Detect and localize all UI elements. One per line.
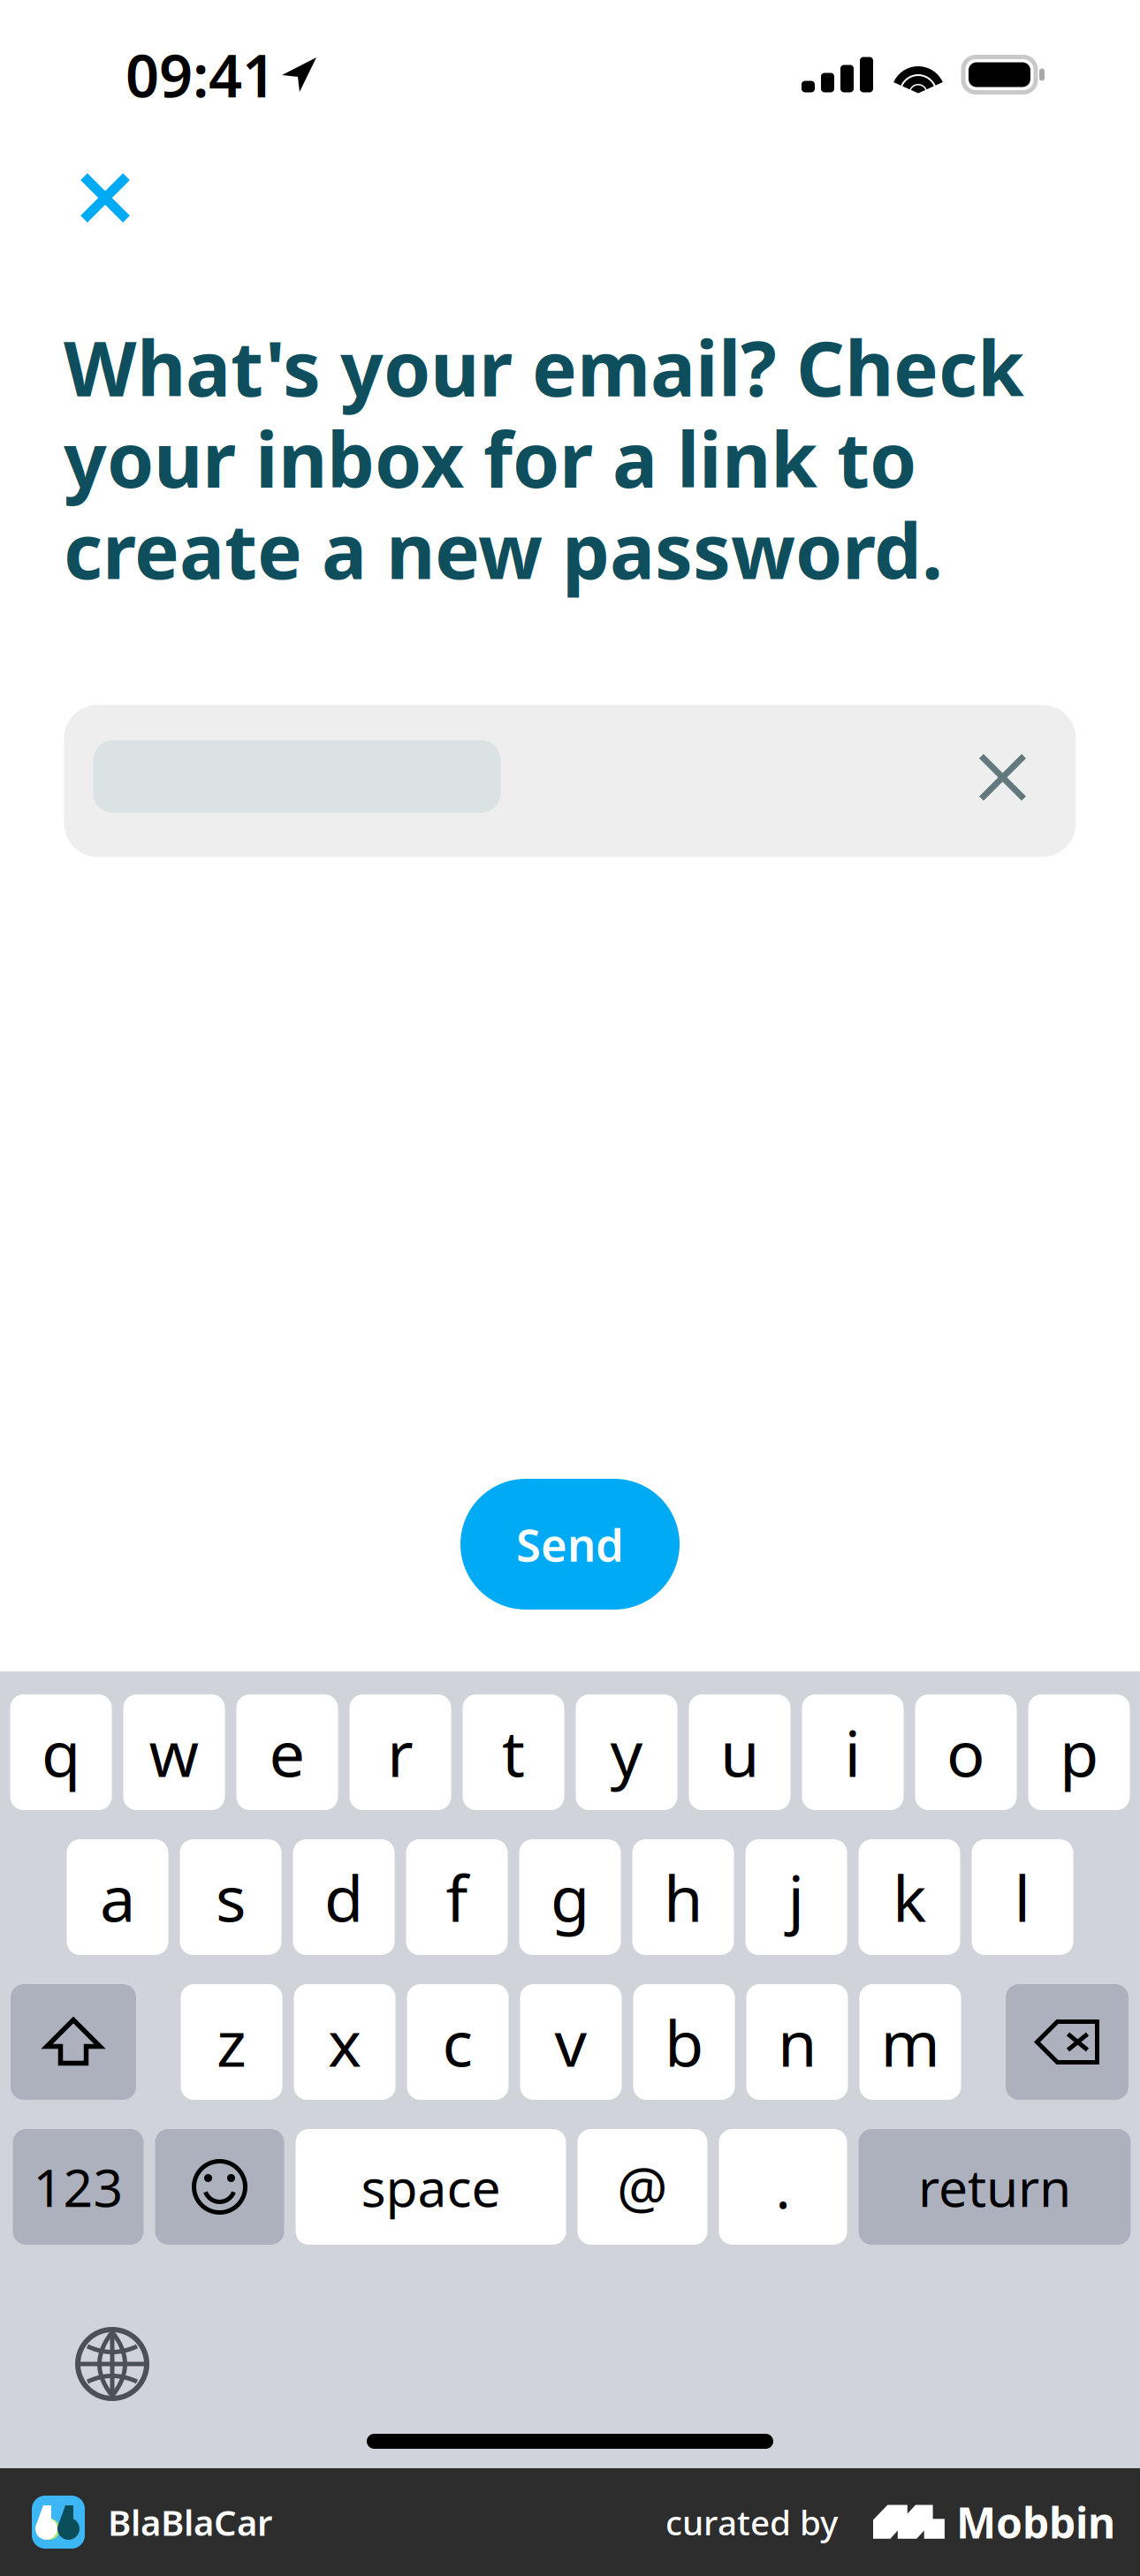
button[interactable]: o [915,1694,1017,1810]
button[interactable]: l [972,1839,1073,1955]
staticText: h [664,1855,703,1939]
staticText: x [328,2000,361,2084]
button[interactable]: x [294,1984,395,2100]
staticText: t [502,1710,525,1794]
staticText: g [551,1855,589,1939]
button[interactable]: space [296,2129,566,2245]
button[interactable]: f [406,1839,508,1955]
staticText: . [775,2149,790,2224]
staticText: z [217,2000,247,2084]
staticText: 123 [33,2152,123,2221]
staticText: r [387,1710,414,1794]
staticText: u [720,1710,759,1794]
button[interactable]: Next keyboard [78,2330,147,2398]
button[interactable]: 123 [13,2129,144,2245]
button[interactable]: c [407,1984,509,2100]
button[interactable]: z [181,1984,282,2100]
staticText: BlaBlaCar [108,2499,272,2546]
button[interactable]: e [236,1694,338,1810]
staticText: 09:41 [125,36,276,114]
button[interactable]: m [859,1984,961,2100]
staticText: v [555,2000,587,2084]
staticText: c [442,2000,473,2084]
staticText: p [1060,1710,1098,1794]
staticText: m [881,2000,940,2084]
button[interactable]: s [180,1839,281,1955]
button[interactable]: Shift [11,1984,136,2100]
staticText: o [946,1710,985,1794]
staticText: n [778,2000,817,2084]
button[interactable]: i [802,1694,904,1810]
staticText: space [361,2152,501,2221]
staticText: create a new password. [64,500,943,600]
button[interactable]: k [859,1839,960,1955]
staticText: Send [516,1515,624,1574]
button[interactable]: y [576,1694,677,1810]
staticText: k [893,1855,926,1939]
button[interactable]: u [689,1694,790,1810]
button[interactable]: return [859,2129,1131,2245]
staticText: your inbox for a link to [64,408,916,508]
staticText: @ [617,2149,668,2224]
button[interactable]: p [1028,1694,1130,1810]
staticText: b [665,2000,703,2084]
staticText: l [1014,1855,1031,1939]
button[interactable]: d [293,1839,395,1955]
button[interactable]: a [67,1839,168,1955]
button[interactable]: Close [63,155,148,240]
button[interactable]: Clear text [964,742,1041,820]
button[interactable]: b [633,1984,735,2100]
button[interactable]: v [520,1984,622,2100]
staticText: return [918,2152,1071,2221]
staticText: i [844,1710,861,1794]
button[interactable]: t [463,1694,564,1810]
staticText: f [446,1855,468,1939]
button[interactable]: w [123,1694,225,1810]
button[interactable]: g [519,1839,621,1955]
button[interactable]: n [746,1984,848,2100]
button[interactable]: Delete [1006,1984,1129,2100]
staticText: d [324,1855,363,1939]
staticText: What's your email? Check [64,317,1024,417]
button[interactable]: Send [460,1479,680,1610]
staticText: q [42,1710,80,1794]
button[interactable]: . [719,2129,847,2245]
button[interactable]: j [745,1839,847,1955]
staticText: curated by [665,2499,838,2545]
button[interactable]: q [10,1694,112,1810]
button[interactable]: r [350,1694,451,1810]
staticText: j [788,1855,805,1939]
button[interactable]: Emoji [155,2129,284,2245]
staticText: y [610,1710,643,1794]
staticText: a [100,1855,135,1939]
button[interactable]: h [632,1839,734,1955]
staticText: w [149,1710,199,1794]
staticText: Mobbin [956,2494,1115,2550]
staticText: e [269,1710,305,1794]
button[interactable]: @ [578,2129,707,2245]
staticText: s [216,1855,246,1939]
